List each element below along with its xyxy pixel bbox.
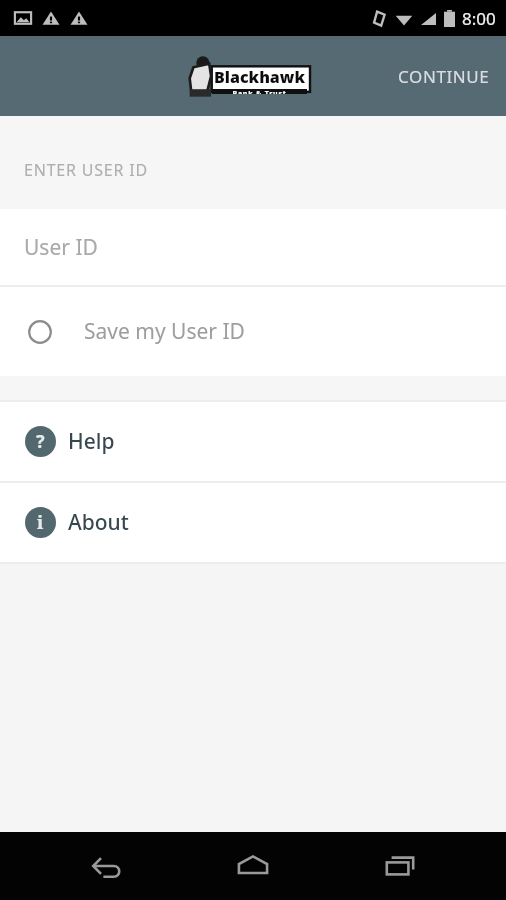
staticText: Save my User ID	[84, 317, 245, 346]
button[interactable]: i	[0, 483, 506, 562]
button[interactable]: User ID	[0, 209, 506, 285]
staticText: Bank & Trust	[232, 89, 287, 94]
button[interactable]: CONTINUE	[382, 36, 506, 116]
button[interactable]: Save my User ID	[0, 287, 506, 376]
staticText: Help	[68, 427, 115, 456]
staticText: User ID	[24, 233, 98, 262]
button[interactable]: ?	[0, 402, 506, 481]
staticText: ?	[36, 429, 45, 454]
button[interactable]: Back	[67, 832, 147, 900]
staticText: i	[37, 510, 44, 535]
button[interactable]: Recent apps	[360, 832, 440, 900]
staticText: About	[68, 508, 129, 537]
button[interactable]: Home	[213, 832, 293, 900]
staticText: 8:00	[462, 7, 496, 30]
staticText: ENTER USER ID	[24, 159, 148, 181]
staticText: CONTINUE	[398, 65, 490, 88]
staticText: Blackhawk	[214, 66, 305, 88]
